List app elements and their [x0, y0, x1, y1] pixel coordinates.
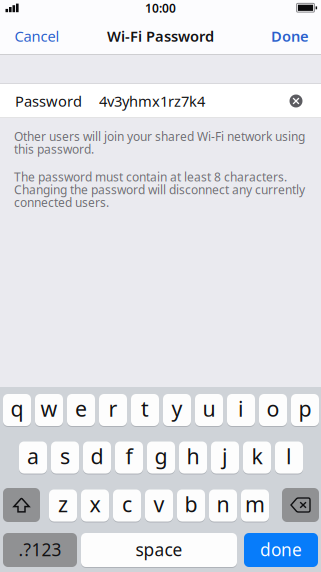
staticText: done [260, 538, 302, 561]
staticText: u [202, 394, 215, 423]
staticText: t [141, 394, 149, 423]
staticText: w [40, 394, 57, 423]
button[interactable]: v [145, 489, 173, 522]
button[interactable]: z [49, 489, 77, 522]
button[interactable]: e [67, 394, 95, 427]
button[interactable]: Cancel [0, 17, 73, 55]
button[interactable]: Clear text [283, 88, 309, 114]
button[interactable]: n [209, 489, 237, 522]
button[interactable]: o [259, 394, 287, 427]
staticText: 10:00 [145, 0, 176, 16]
staticText: d [90, 442, 103, 470]
button[interactable]: i [227, 394, 255, 427]
staticText: s [60, 442, 70, 470]
staticText: x [89, 490, 100, 518]
button[interactable]: .?123 [3, 533, 77, 568]
staticText: Wi-Fi Password [107, 26, 214, 46]
button[interactable]: g [147, 441, 175, 474]
staticText: y [171, 394, 182, 423]
staticText: f [125, 442, 132, 470]
staticText: l [286, 442, 292, 470]
button[interactable]: done [244, 533, 318, 568]
staticText: r [108, 394, 117, 423]
button[interactable]: l [275, 441, 303, 474]
staticText: k [251, 442, 262, 470]
staticText: e [75, 394, 87, 423]
staticText: n [216, 490, 229, 518]
button[interactable]: y [163, 394, 191, 427]
staticText: o [266, 394, 279, 423]
button[interactable]: k [243, 441, 271, 474]
staticText: The password must contain at least 8 cha… [14, 170, 305, 209]
staticText: m [245, 490, 265, 518]
button[interactable]: c [113, 489, 141, 522]
staticText: .?123 [18, 538, 61, 561]
staticText: Password [15, 91, 82, 111]
staticText: g [154, 442, 167, 470]
button[interactable]: a [19, 441, 47, 474]
button[interactable]: Shift [3, 488, 40, 522]
staticText: j [222, 442, 228, 470]
staticText: b [184, 490, 197, 518]
staticText: h [186, 442, 199, 470]
button[interactable]: h [179, 441, 207, 474]
button[interactable]: q [3, 394, 31, 427]
button[interactable]: r [99, 394, 127, 427]
button[interactable]: Done [257, 17, 321, 55]
staticText: 4v3yhmx1rz7k4 [99, 91, 205, 111]
button[interactable]: f [115, 441, 143, 474]
button[interactable]: j [211, 441, 239, 474]
staticText: z [58, 490, 68, 518]
staticText: p [298, 394, 311, 423]
button[interactable]: Delete [282, 488, 319, 522]
button[interactable]: x [81, 489, 109, 522]
staticText: v [153, 490, 164, 518]
staticText: a [27, 442, 39, 470]
button[interactable]: p [291, 394, 319, 427]
button[interactable]: w [35, 394, 63, 427]
button[interactable]: m [241, 489, 269, 522]
staticText: Other users will join your shared Wi-Fi … [14, 130, 305, 155]
button[interactable]: space [81, 533, 237, 568]
button[interactable]: s [51, 441, 79, 474]
button[interactable]: t [131, 394, 159, 427]
staticText: i [238, 394, 244, 423]
staticText: Done [271, 26, 309, 46]
button[interactable]: b [177, 489, 205, 522]
staticText: Cancel [14, 26, 59, 46]
button[interactable]: u [195, 394, 223, 427]
button[interactable]: d [83, 441, 111, 474]
staticText: space [135, 538, 182, 561]
staticText: c [122, 490, 132, 518]
staticText: q [10, 394, 23, 423]
